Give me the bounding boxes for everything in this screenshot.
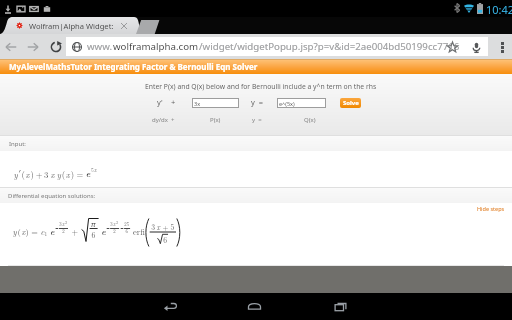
staticText: 3x (194, 100, 201, 107)
button[interactable]: Hide steps (477, 205, 505, 212)
button[interactable]: More options (494, 39, 510, 55)
button[interactable]: Wolfram|Alpha Widget tab (0, 17, 140, 34)
staticText: dy/dx (152, 116, 168, 124)
staticText: MyAlevelMathsTutor Integrating Factor & … (9, 61, 258, 72)
staticText: wolframalpha.com (113, 40, 199, 53)
button[interactable]: www. (66, 37, 488, 56)
staticText: e^(5x) (279, 100, 295, 107)
button[interactable]: 3x (192, 98, 239, 108)
button[interactable]: Back (155, 293, 185, 319)
button[interactable]: Bookmark (444, 39, 460, 55)
button[interactable]: Reload (47, 38, 65, 56)
button[interactable]: Solve (340, 98, 361, 108)
staticText: Enter P(x) and Q(x) below and for Bernou… (145, 82, 377, 91)
staticText: y' (157, 97, 163, 107)
staticText: y = (252, 116, 262, 124)
staticText: Solve (343, 99, 359, 107)
staticText: Input: (9, 140, 26, 148)
staticText: Differential equation solutions: (8, 192, 96, 200)
button[interactable]: Home (239, 293, 269, 319)
staticText: + (171, 116, 175, 124)
button[interactable]: Recent apps (325, 293, 355, 319)
staticText: y = (251, 97, 264, 107)
button[interactable]: Other tab (136, 17, 162, 34)
staticText: Wolfram|Alpha Widget: (29, 21, 114, 31)
button[interactable]: Voice search (468, 39, 484, 55)
staticText: 10:42 (486, 2, 512, 17)
button[interactable]: Back (2, 38, 20, 56)
staticText: /widget/widgetPopup.jsp?p=v&id=2ae004bd5… (199, 40, 460, 53)
staticText: www. (87, 40, 113, 53)
button[interactable]: Forward (24, 38, 42, 56)
staticText: + (171, 97, 176, 107)
button[interactable]: Close tab (121, 23, 127, 29)
button[interactable]: MyAlevelMathsTutor Integrating Factor & … (0, 59, 512, 74)
staticText: P(x) (210, 116, 221, 124)
staticText: Q(x) (304, 116, 316, 124)
button[interactable]: e^(5x) (277, 98, 326, 108)
